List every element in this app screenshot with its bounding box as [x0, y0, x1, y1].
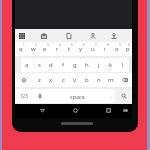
button[interactable]: w	[27, 42, 39, 56]
staticText: z	[38, 76, 41, 84]
staticText: 1	[23, 43, 25, 47]
staticText: i	[104, 45, 106, 53]
staticText: c	[62, 76, 65, 84]
button[interactable]: s	[33, 58, 45, 72]
button[interactable]: p	[123, 42, 132, 56]
staticText: 2	[35, 43, 37, 47]
staticText: 4	[59, 43, 61, 47]
staticText: e	[43, 45, 47, 53]
button[interactable]: Contacts	[87, 30, 98, 41]
staticText: o	[115, 45, 119, 53]
button[interactable]: Recents	[103, 105, 113, 115]
staticText: space	[70, 93, 85, 100]
staticText: a	[25, 61, 29, 69]
button[interactable]: q	[15, 42, 27, 56]
button[interactable]: a	[21, 58, 33, 72]
button[interactable]: y	[75, 42, 87, 56]
button[interactable]: Backspace	[117, 73, 132, 87]
staticText: 3	[47, 43, 49, 47]
staticText: s	[38, 61, 41, 69]
staticText: m	[108, 76, 114, 84]
button[interactable]: h	[81, 58, 93, 72]
button[interactable]: d	[45, 58, 57, 72]
staticText: g	[73, 61, 77, 69]
button[interactable]: Voice input	[32, 89, 47, 103]
button[interactable]: Search	[115, 89, 132, 103]
button[interactable]: f	[57, 58, 69, 72]
button[interactable]: c	[57, 73, 69, 87]
staticText: u	[91, 45, 95, 53]
staticText: t	[68, 45, 71, 53]
button[interactable]: k	[105, 58, 117, 72]
staticText: y	[79, 45, 83, 53]
staticText: v	[73, 76, 77, 84]
button[interactable]: 123	[15, 89, 32, 103]
staticText: f	[62, 61, 65, 69]
staticText: d	[49, 61, 53, 69]
staticText: k	[109, 61, 113, 69]
staticText: x	[49, 76, 53, 84]
button[interactable]: Hide keyboard	[120, 105, 130, 115]
staticText: b	[85, 76, 89, 84]
button[interactable]: t	[63, 42, 75, 56]
button[interactable]: Documents	[63, 30, 74, 41]
staticText: 6	[83, 43, 85, 47]
staticText: w	[31, 45, 36, 53]
button[interactable]: z	[33, 73, 45, 87]
button[interactable]: Apps	[16, 30, 27, 41]
button[interactable]: b	[81, 73, 93, 87]
button[interactable]: r	[51, 42, 63, 56]
button[interactable]: v	[69, 73, 81, 87]
staticText: 0	[128, 43, 130, 47]
button[interactable]: n	[93, 73, 105, 87]
button[interactable]: g	[69, 58, 81, 72]
staticText: 7	[95, 43, 97, 47]
staticText: j	[98, 61, 100, 69]
button[interactable]: o	[111, 42, 123, 56]
button[interactable]: .	[107, 89, 115, 103]
staticText: 8	[107, 43, 109, 47]
staticText: l	[122, 61, 124, 69]
button[interactable]: space	[47, 89, 107, 103]
staticText: .	[110, 92, 112, 100]
button[interactable]: j	[93, 58, 105, 72]
staticText: h	[85, 61, 89, 69]
button[interactable]: m	[105, 73, 117, 87]
button[interactable]: u	[87, 42, 99, 56]
button[interactable]: e	[39, 42, 51, 56]
button[interactable]: Home	[70, 105, 80, 115]
staticText: p	[126, 45, 130, 53]
staticText: n	[97, 76, 101, 84]
staticText: 5	[71, 43, 73, 47]
button[interactable]: i	[99, 42, 111, 56]
staticText: 123	[20, 93, 28, 99]
staticText: 9	[119, 43, 121, 47]
staticText: q	[19, 45, 23, 53]
button[interactable]: Back	[37, 105, 47, 115]
button[interactable]: Shift	[15, 73, 33, 87]
staticText: r	[56, 45, 59, 53]
button[interactable]: l	[117, 58, 129, 72]
button[interactable]: Stickers	[108, 30, 119, 41]
button[interactable]: Clipboard	[38, 30, 49, 41]
button[interactable]: x	[45, 73, 57, 87]
